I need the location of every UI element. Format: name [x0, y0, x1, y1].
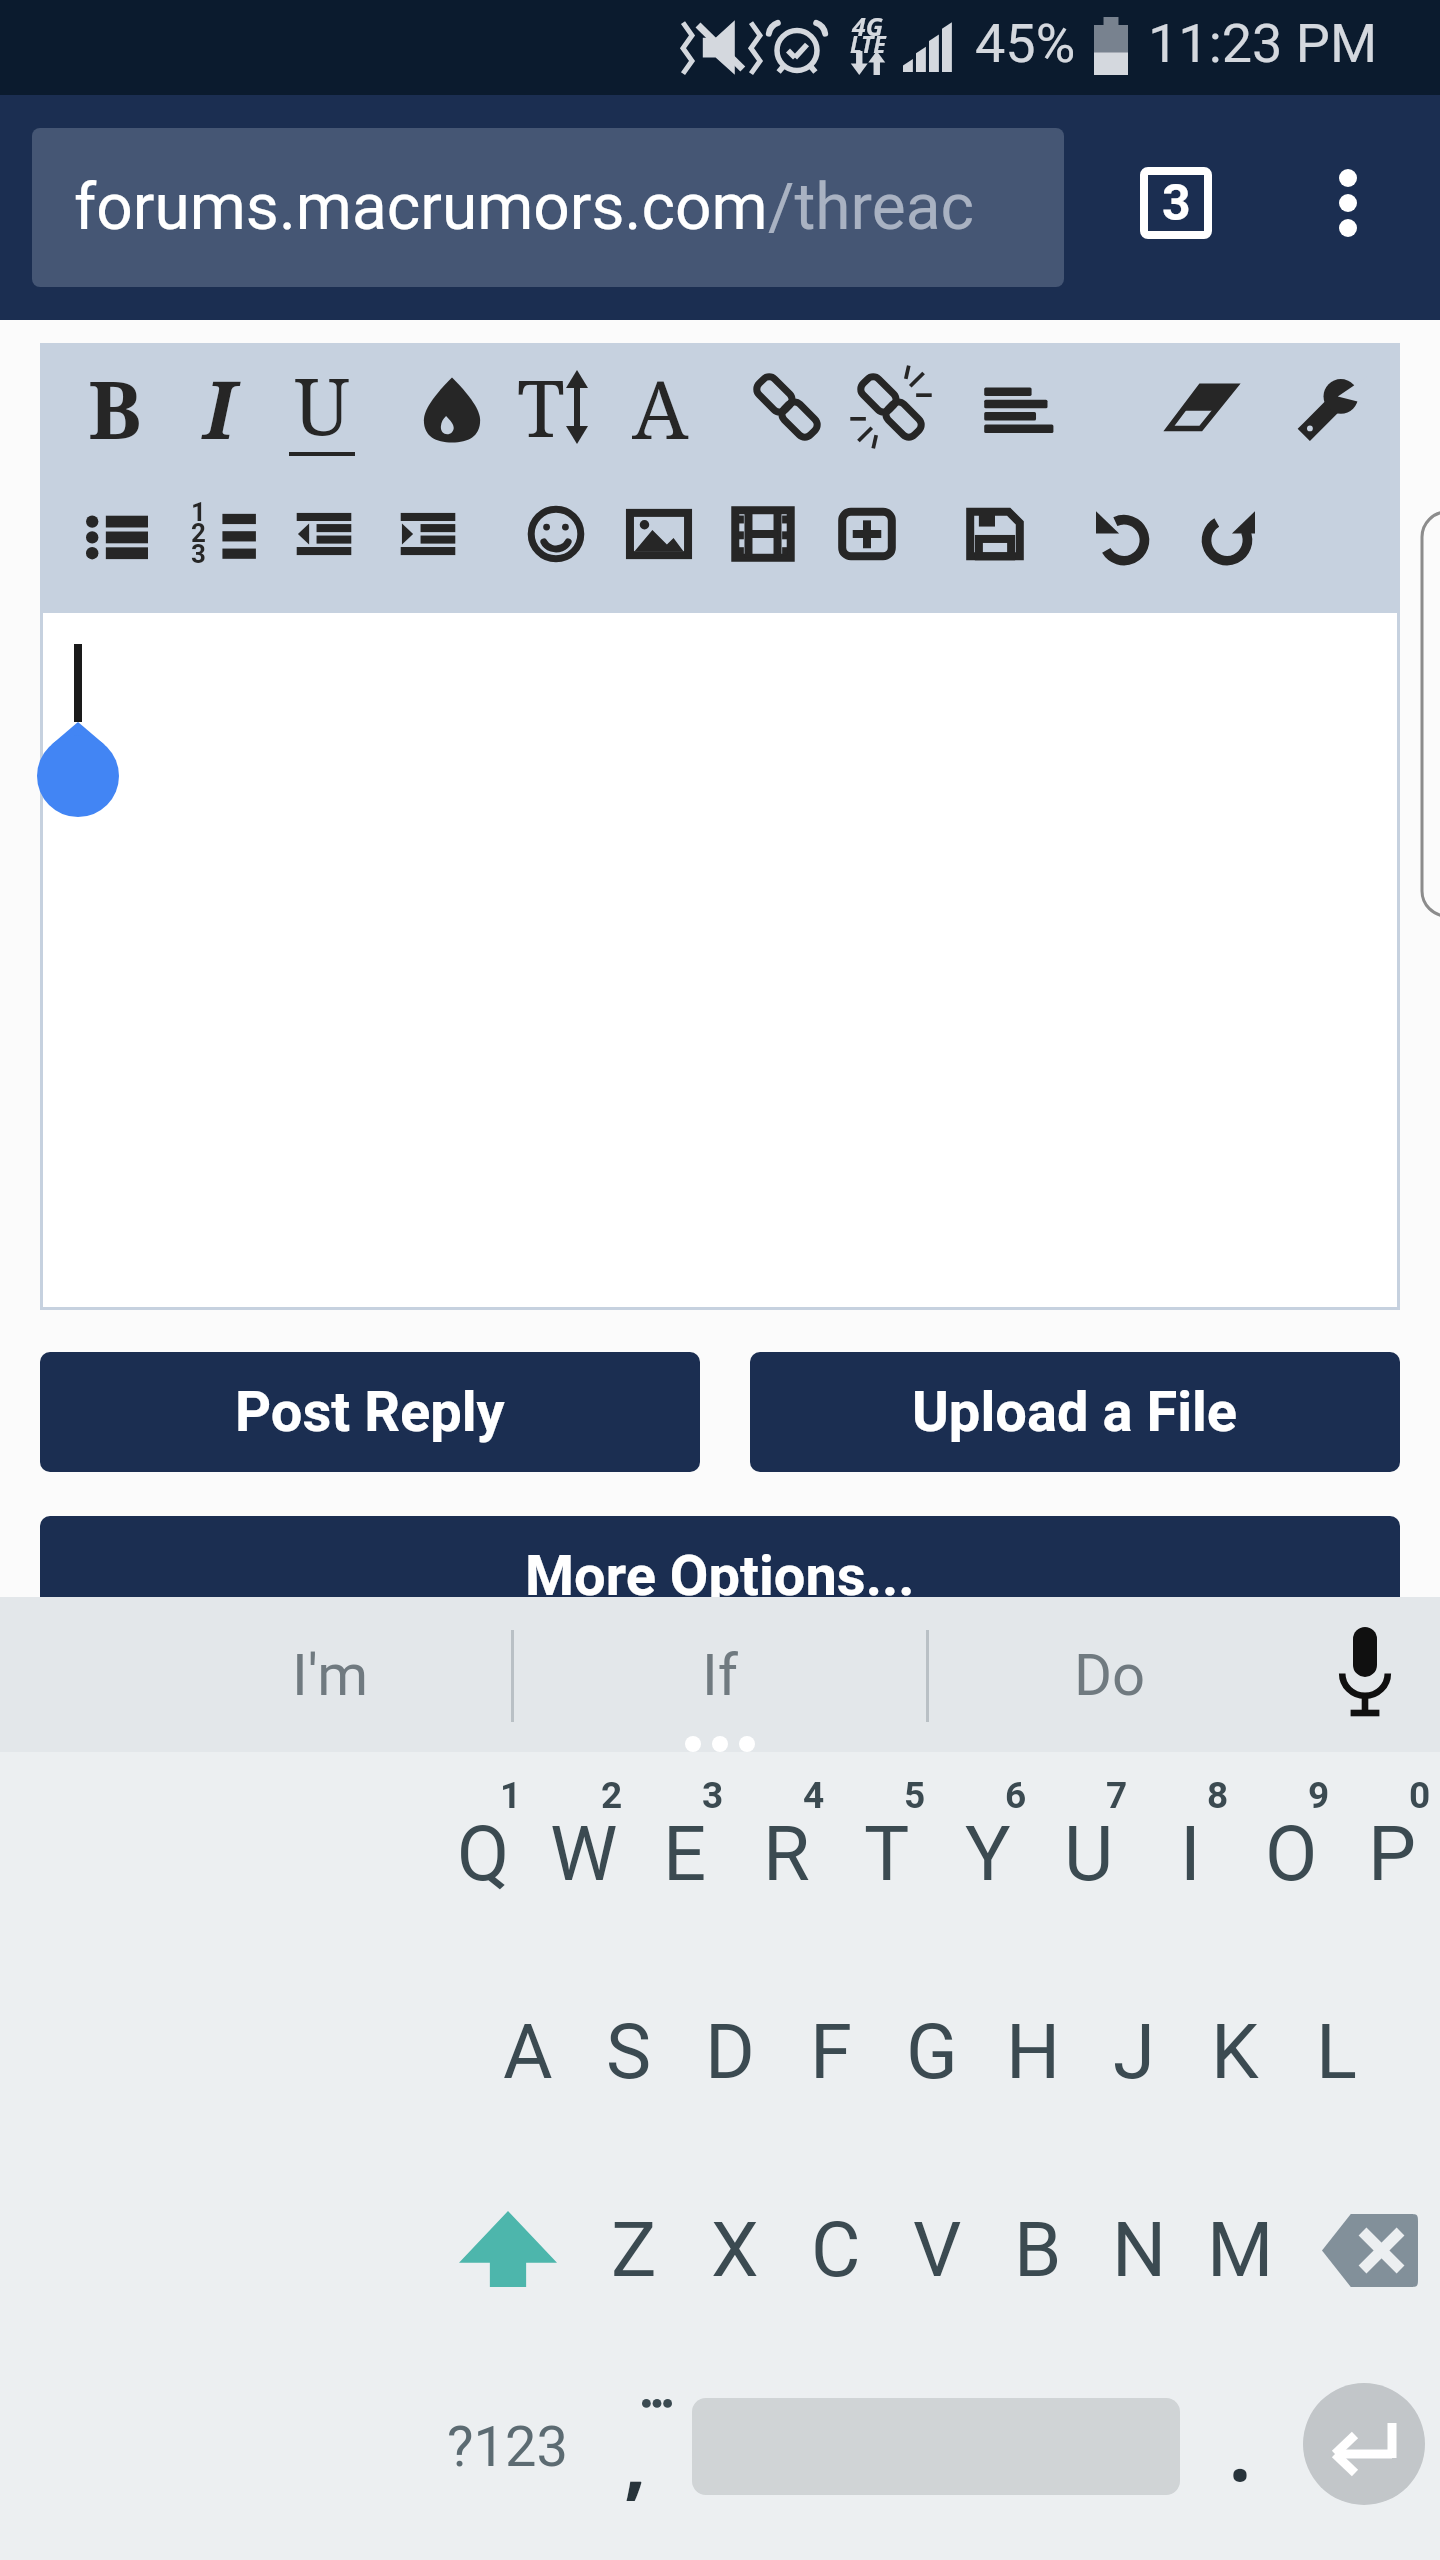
staticText: T [864, 1809, 910, 1898]
button[interactable]: S [579, 1991, 679, 2111]
button[interactable]: K [1185, 1991, 1285, 2111]
staticText: Upload a File [912, 1379, 1238, 1445]
staticText: N [1112, 2205, 1167, 2294]
button[interactable]: P [1342, 1793, 1440, 1913]
staticText: LTE [850, 28, 886, 59]
staticText: H [1006, 2007, 1061, 2096]
staticText: ?123 [447, 2414, 568, 2480]
button[interactable]: F [781, 1991, 881, 2111]
staticText: G [906, 2007, 958, 2096]
button[interactable]: E [635, 1793, 735, 1913]
button[interactable]: I [167, 352, 271, 462]
staticText: V [913, 2205, 962, 2294]
staticText: T [517, 354, 565, 460]
button[interactable]: R [736, 1793, 836, 1913]
button[interactable]: B [988, 2189, 1088, 2309]
button[interactable]: Enter [1303, 2383, 1425, 2505]
button[interactable]: Remove formatting [1153, 357, 1253, 457]
button[interactable]: Do [970, 1597, 1250, 1752]
button[interactable]: N [1089, 2189, 1189, 2309]
staticText: , [624, 2408, 647, 2514]
button[interactable]: I'm [190, 1597, 470, 1752]
button[interactable]: D [680, 1991, 780, 2111]
button[interactable]: Upload a File [750, 1352, 1400, 1472]
button[interactable]: Insert video [713, 484, 813, 584]
button[interactable]: Insert [817, 484, 917, 584]
button[interactable]: Font size [498, 352, 608, 462]
button[interactable]: Remove link [841, 357, 941, 457]
staticText: X [711, 2205, 759, 2294]
button[interactable]: Undo [1074, 484, 1174, 584]
button[interactable]: Tools [1281, 357, 1381, 457]
button[interactable]: X [685, 2189, 785, 2309]
button[interactable]: A [478, 1991, 578, 2111]
staticText: 8 [1207, 1774, 1229, 1817]
staticText: L [1316, 2007, 1357, 2096]
button[interactable]: Text colour [402, 357, 502, 457]
button[interactable]: I [1140, 1793, 1240, 1913]
button[interactable]: U [1039, 1793, 1139, 1913]
button[interactable]: Outdent [274, 484, 374, 584]
staticText: P [1368, 1809, 1416, 1898]
staticText: Z [611, 2205, 657, 2294]
button[interactable]: forums.macrumors.com [32, 128, 1064, 287]
button[interactable]: M [1190, 2189, 1290, 2309]
button[interactable]: V [887, 2189, 987, 2309]
button[interactable]: H [983, 1991, 1083, 2111]
button[interactable]: Redo [1177, 484, 1277, 584]
button[interactable]: Numbered list [178, 484, 278, 584]
staticText: forums.macrumors.com [74, 170, 768, 245]
staticText: Y [965, 1809, 1011, 1898]
staticText: F [810, 2007, 853, 2096]
button[interactable]: Backspace [1300, 2180, 1440, 2320]
staticText: E [663, 1809, 707, 1898]
button[interactable]: Insert link [737, 357, 837, 457]
button[interactable]: More Options... [40, 1516, 1400, 1636]
button[interactable]: More options [1290, 145, 1406, 261]
staticText: W [550, 1809, 618, 1898]
staticText: 1 [500, 1774, 522, 1817]
button[interactable]: Indent [378, 484, 478, 584]
button[interactable]: Z [584, 2189, 684, 2309]
button[interactable]: G [882, 1991, 982, 2111]
button[interactable]: If [580, 1597, 860, 1752]
button[interactable]: , [587, 2396, 683, 2526]
staticText: 5 [904, 1774, 926, 1817]
button[interactable]: Underline [272, 352, 372, 462]
button[interactable]: A [608, 352, 712, 462]
staticText: K [1211, 2007, 1259, 2096]
button[interactable]: C [786, 2189, 886, 2309]
staticText: O [1265, 1809, 1318, 1898]
button[interactable]: Bullet list [67, 484, 167, 584]
button[interactable]: Save draft [945, 484, 1045, 584]
button[interactable]: Q [433, 1793, 533, 1913]
button[interactable]: Alignment [969, 357, 1069, 457]
button[interactable]: Insert image [609, 484, 709, 584]
button[interactable]: Post Reply [40, 1352, 700, 1472]
staticText: 3 [702, 1774, 724, 1817]
staticText: 9 [1308, 1774, 1330, 1817]
button[interactable]: Tabs [1118, 145, 1234, 261]
button[interactable]: L [1286, 1991, 1386, 2111]
staticText: More Options... [525, 1543, 915, 1609]
button[interactable]: Y [938, 1793, 1038, 1913]
staticText: R [763, 1809, 810, 1898]
staticText: /threac [768, 170, 974, 245]
staticText: I'm [292, 1641, 369, 1709]
button[interactable]: W [534, 1793, 634, 1913]
button[interactable]: T [837, 1793, 937, 1913]
button[interactable]: Emoji [506, 484, 606, 584]
button[interactable]: Shift [410, 2185, 606, 2313]
button[interactable]: Voice input [1305, 1610, 1425, 1730]
button[interactable]: O [1241, 1793, 1341, 1913]
staticText: A [503, 2007, 553, 2096]
button[interactable]: B [63, 352, 167, 462]
button[interactable]: J [1084, 1991, 1184, 2111]
button[interactable]: . [1190, 2396, 1290, 2506]
button[interactable] [40, 610, 1400, 1310]
button[interactable]: ?123 [427, 2382, 587, 2512]
staticText: Q [457, 1809, 510, 1898]
staticText: I [1180, 1809, 1201, 1898]
staticText: 7 [1106, 1774, 1128, 1817]
